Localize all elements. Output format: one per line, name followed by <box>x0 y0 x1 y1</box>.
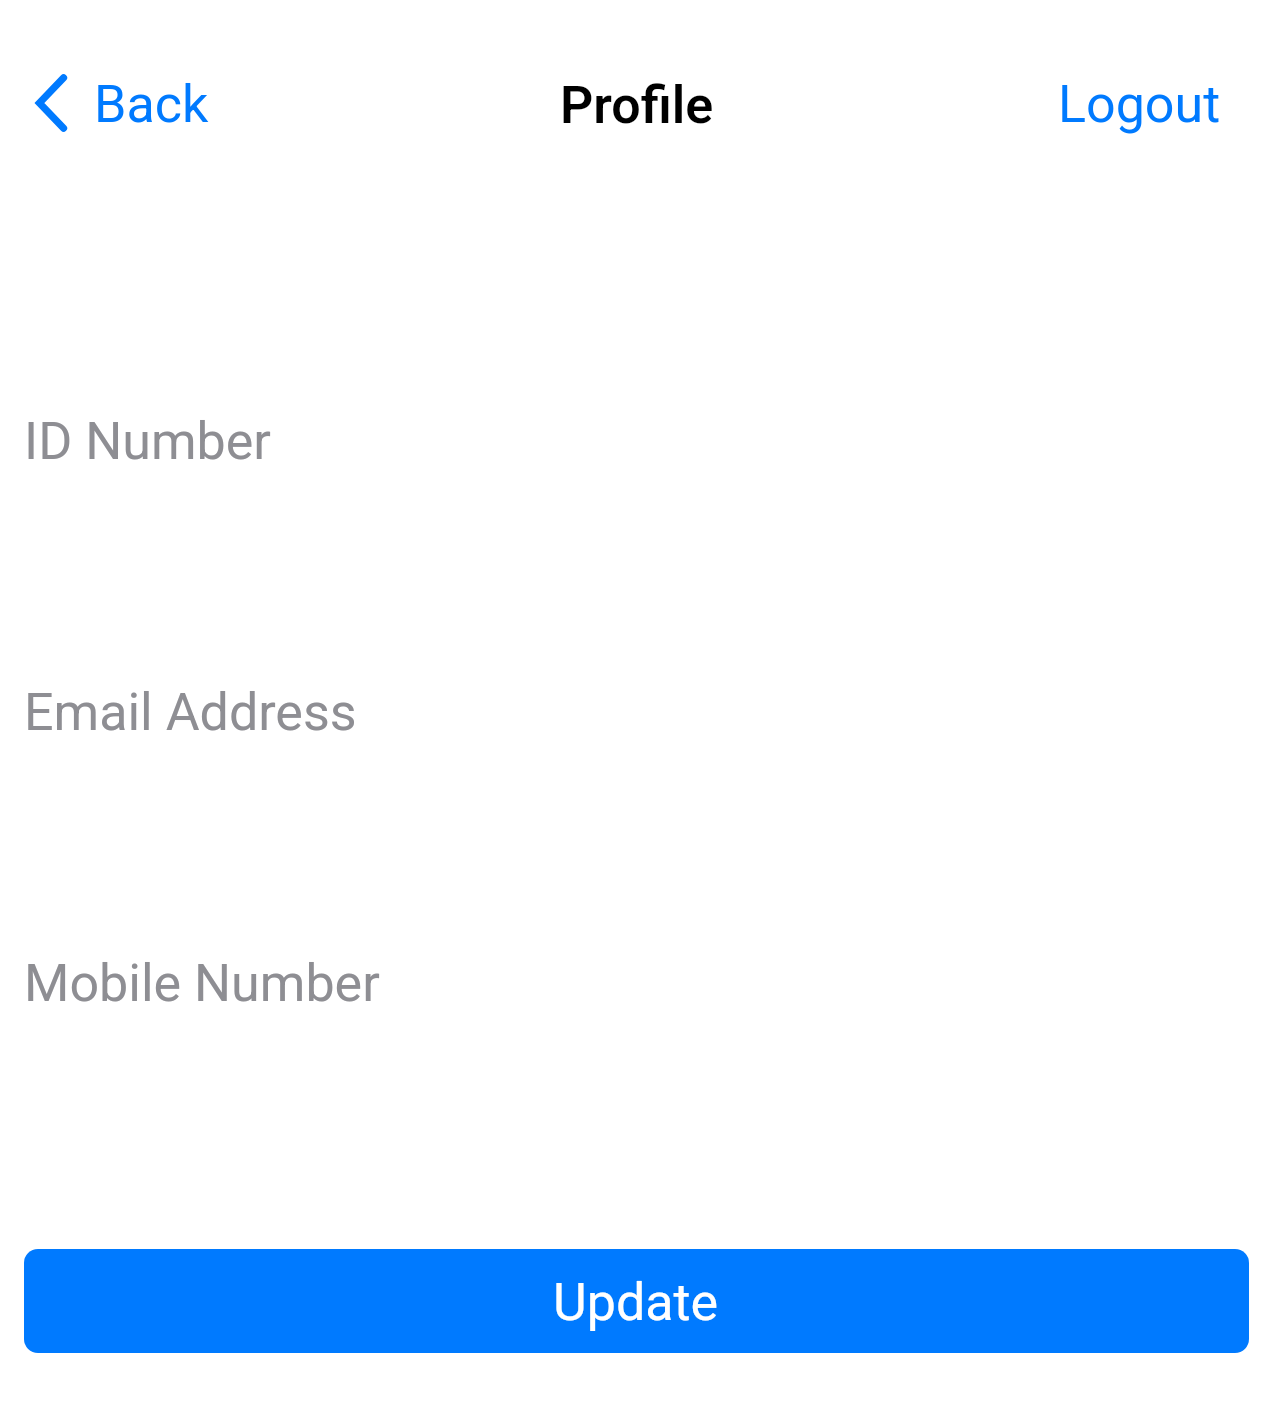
button[interactable]: Email Address <box>0 657 1277 767</box>
staticText: Email Address <box>24 682 357 743</box>
button[interactable]: ID Number <box>0 386 1277 496</box>
button[interactable]: Mobile Number <box>0 928 1277 1038</box>
staticText: Profile <box>560 75 714 136</box>
staticText: Logout <box>1058 74 1221 135</box>
button[interactable]: Logout <box>1040 58 1235 150</box>
staticText: ID Number <box>24 411 271 472</box>
staticText: Mobile Number <box>24 953 380 1014</box>
staticText: Back <box>94 74 209 135</box>
staticText: Update <box>553 1272 719 1333</box>
button[interactable]: Back <box>14 56 227 148</box>
button[interactable]: Update <box>24 1249 1249 1353</box>
